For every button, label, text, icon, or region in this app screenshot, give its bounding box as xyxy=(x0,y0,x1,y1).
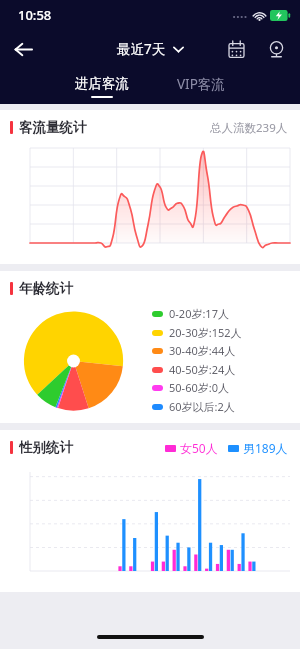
staticText: 男189人 xyxy=(243,440,288,456)
staticText: 40-50岁:24人 xyxy=(169,362,236,377)
staticText: 客流量统计 xyxy=(19,119,87,136)
staticText: 0-20岁:17人 xyxy=(169,306,229,321)
button[interactable]: 最近7天 xyxy=(117,40,184,58)
staticText: 性别统计 xyxy=(19,439,73,456)
staticText: 10:58 xyxy=(18,6,52,24)
staticText: 年龄统计 xyxy=(19,280,73,297)
staticText: 最近7天 xyxy=(117,40,166,58)
staticText: 总人流数239人 xyxy=(210,120,288,136)
button[interactable]: VIP客流 xyxy=(177,75,225,93)
button[interactable]: Back xyxy=(6,32,40,66)
staticText: 30-40岁:44人 xyxy=(169,343,236,358)
staticText: 进店客流 xyxy=(75,75,129,92)
staticText: VIP客流 xyxy=(177,75,225,93)
staticText: 50-60岁:0人 xyxy=(169,380,229,395)
staticText: 女50人 xyxy=(180,440,218,456)
button[interactable]: 进店客流 xyxy=(75,75,129,98)
staticText: 20-30岁:152人 xyxy=(169,325,242,340)
button[interactable]: Camera xyxy=(260,33,292,65)
staticText: 60岁以后:2人 xyxy=(169,399,235,414)
button[interactable]: Calendar xyxy=(220,33,252,65)
